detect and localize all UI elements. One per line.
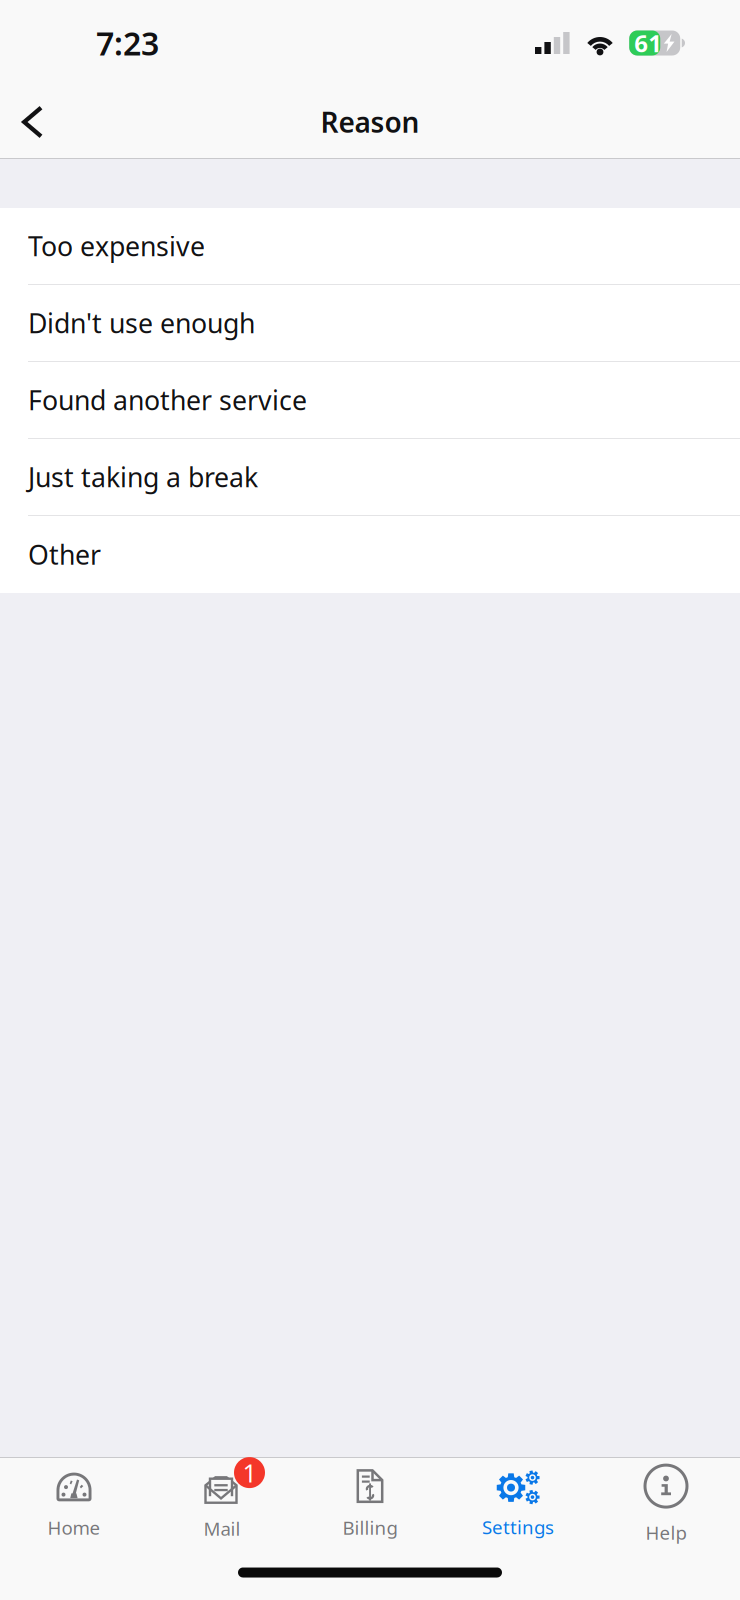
staticText: Didn't use enough xyxy=(28,305,255,341)
staticText: 61 xyxy=(634,27,662,59)
button[interactable]: Home xyxy=(0,1458,148,1545)
staticText: Help xyxy=(645,1520,686,1545)
button[interactable]: Too expensive xyxy=(0,208,740,284)
staticText: Settings xyxy=(482,1515,554,1539)
staticText: Home xyxy=(47,1515,100,1540)
button[interactable]: Found another service xyxy=(0,362,740,438)
staticText: Billing xyxy=(342,1515,397,1540)
staticText: Too expensive xyxy=(28,228,205,264)
button[interactable]: Back xyxy=(0,86,67,158)
staticText: 1 xyxy=(242,1456,256,1489)
button[interactable]: Settings xyxy=(444,1458,592,1545)
button[interactable]: Help xyxy=(592,1458,740,1545)
staticText: Mail xyxy=(203,1516,240,1541)
staticText: Other xyxy=(28,537,101,572)
button[interactable]: Billing xyxy=(296,1458,444,1545)
staticText: Found another service xyxy=(28,382,307,418)
button[interactable]: Other xyxy=(0,516,740,593)
button[interactable]: Didn't use enough xyxy=(0,285,740,361)
staticText: Reason xyxy=(320,103,419,141)
staticText: 7:23 xyxy=(96,22,159,64)
staticText: Just taking a break xyxy=(28,459,258,495)
button[interactable]: Just taking a break xyxy=(0,439,740,515)
button[interactable]: 1 xyxy=(148,1458,296,1545)
